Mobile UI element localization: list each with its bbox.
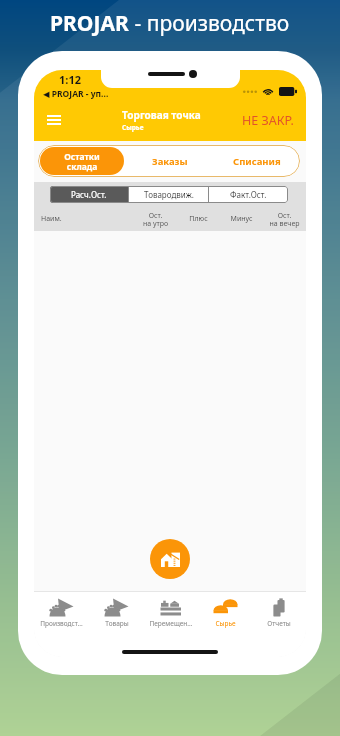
staticText: Товародвиж.	[144, 189, 194, 200]
button[interactable]: Перемещен...	[144, 592, 198, 633]
staticText: Товары	[105, 619, 129, 628]
staticText: Перемещен...	[149, 619, 193, 628]
button[interactable]: Списания	[213, 145, 300, 177]
staticText: Торговая точка	[122, 108, 201, 122]
staticText: Списания	[233, 155, 281, 168]
staticText: ◀ PROJAR - уп...	[43, 88, 109, 100]
button[interactable]: Add warehouse item	[150, 539, 190, 579]
button[interactable]: Факт.Ост.	[209, 186, 288, 203]
staticText: Расч.Ост.	[71, 189, 107, 200]
staticText: Отчеты	[267, 619, 291, 628]
button[interactable]: Заказы	[126, 145, 213, 177]
staticText: Остатки склада	[64, 151, 100, 172]
button[interactable]: Menu	[38, 106, 69, 134]
button[interactable]: Производст...	[34, 592, 89, 633]
staticText: Заказы	[152, 155, 188, 168]
staticText: Факт.Ост.	[230, 189, 267, 200]
staticText: 1:12	[59, 72, 81, 87]
staticText: Производст...	[40, 619, 83, 628]
staticText: НЕ ЗАКР.	[242, 112, 294, 129]
staticText: Сырье	[215, 619, 236, 628]
staticText: Плюс	[177, 214, 220, 224]
button[interactable]: Товародвиж.	[129, 186, 208, 203]
staticText: Наим.	[41, 214, 134, 224]
staticText: Сырье	[122, 123, 144, 132]
button[interactable]: Остатки склада	[40, 147, 124, 175]
staticText: Минус	[220, 214, 263, 224]
button[interactable]: Сырье	[198, 592, 252, 633]
staticText: - производство	[129, 9, 290, 38]
button[interactable]: Отчеты	[252, 592, 306, 633]
staticText: PROJAR	[50, 9, 129, 38]
button[interactable]: Расч.Ост.	[50, 186, 128, 203]
staticText: Ост. на утро	[134, 211, 177, 228]
button[interactable]: Товары	[89, 592, 144, 633]
staticText: Ост. на вечер	[263, 211, 306, 228]
